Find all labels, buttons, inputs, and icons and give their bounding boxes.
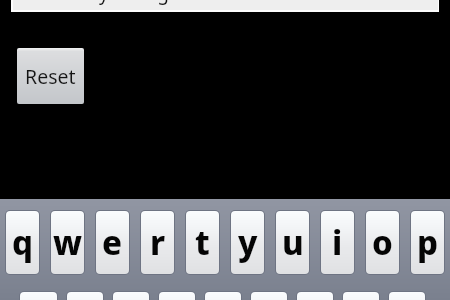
staticText: w [53,220,83,265]
staticText: Reset [25,63,76,90]
staticText: y [238,220,258,265]
button[interactable]: p [411,211,444,274]
staticText: q [12,220,34,265]
button[interactable]: y [231,211,264,274]
button[interactable]: l [389,292,425,300]
button[interactable]: It is my dialog text [11,0,439,12]
button[interactable]: d [113,292,149,300]
button[interactable]: h [251,292,287,300]
button[interactable]: e [96,211,129,274]
staticText: u [282,220,304,265]
staticText: It is my dialog text [44,0,208,6]
button[interactable]: a [20,292,57,300]
button[interactable]: u [276,211,309,274]
button[interactable]: g [205,292,241,300]
button[interactable]: o [366,211,399,274]
staticText: o [372,220,393,265]
staticText: p [417,220,439,265]
button[interactable]: i [321,211,354,274]
button[interactable]: j [297,292,333,300]
button[interactable]: s [67,292,103,300]
button[interactable]: k [343,292,379,300]
staticText: i [332,220,343,265]
button[interactable]: t [186,211,219,274]
staticText: t [195,220,210,265]
staticText: r [150,220,166,265]
button[interactable]: Reset [17,48,84,104]
button[interactable]: r [141,211,174,274]
button[interactable]: f [159,292,195,300]
button[interactable]: q [6,211,39,274]
staticText: e [102,220,123,265]
button[interactable]: w [51,211,84,274]
